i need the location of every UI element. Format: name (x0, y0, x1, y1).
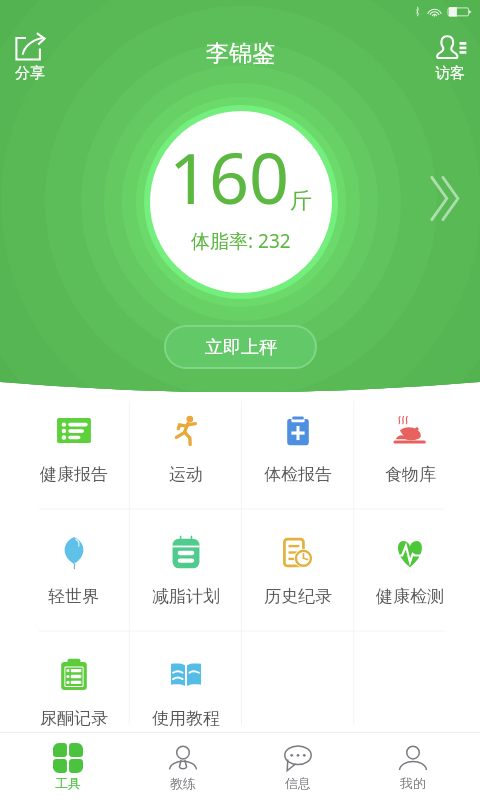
staticText: 我的 (400, 775, 426, 791)
staticText: 轻世界 (48, 586, 99, 607)
button[interactable]: 体检报告 (242, 387, 354, 509)
staticText: 分享 (15, 64, 45, 83)
button[interactable]: 教练 (125, 733, 240, 800)
staticText: 信息 (285, 775, 311, 791)
button[interactable]: 健康报告 (17, 387, 130, 509)
staticText: 李锦鉴 (206, 39, 275, 68)
staticText: 健康检测 (376, 586, 444, 607)
button[interactable]: 减脂计划 (130, 509, 242, 631)
button[interactable]: 食物库 (354, 387, 466, 509)
button[interactable]: 访客 (433, 32, 467, 83)
button[interactable]: 立即上秤 (166, 327, 315, 367)
staticText: 160 (169, 129, 290, 224)
button[interactable]: 运动 (130, 387, 242, 509)
staticText: 体检报告 (264, 464, 332, 485)
button[interactable]: 轻世界 (17, 509, 130, 631)
button[interactable]: 历史纪录 (242, 509, 354, 631)
staticText: 体脂率: 232 (191, 228, 291, 254)
button[interactable]: 信息 (240, 733, 355, 800)
button[interactable]: Next (430, 175, 460, 222)
staticText: 立即上秤 (205, 336, 277, 359)
staticText: 使用教程 (152, 708, 220, 729)
button[interactable]: 工具 (10, 733, 125, 800)
staticText: 运动 (169, 464, 203, 485)
staticText: 访客 (435, 64, 465, 83)
button[interactable]: 使用教程 (130, 631, 242, 753)
staticText: 工具 (55, 775, 81, 791)
button[interactable]: 尿酮记录 (17, 631, 130, 753)
staticText: 尿酮记录 (40, 708, 108, 729)
staticText: 食物库 (385, 464, 436, 485)
button[interactable]: 我的 (355, 733, 470, 800)
staticText: 健康报告 (40, 464, 108, 485)
staticText: 历史纪录 (264, 586, 332, 607)
staticText: 教练 (170, 775, 196, 791)
staticText: 斤 (290, 187, 312, 215)
button[interactable]: 分享 (13, 32, 47, 83)
button[interactable]: 健康检测 (354, 509, 466, 631)
staticText: 减脂计划 (152, 586, 220, 607)
